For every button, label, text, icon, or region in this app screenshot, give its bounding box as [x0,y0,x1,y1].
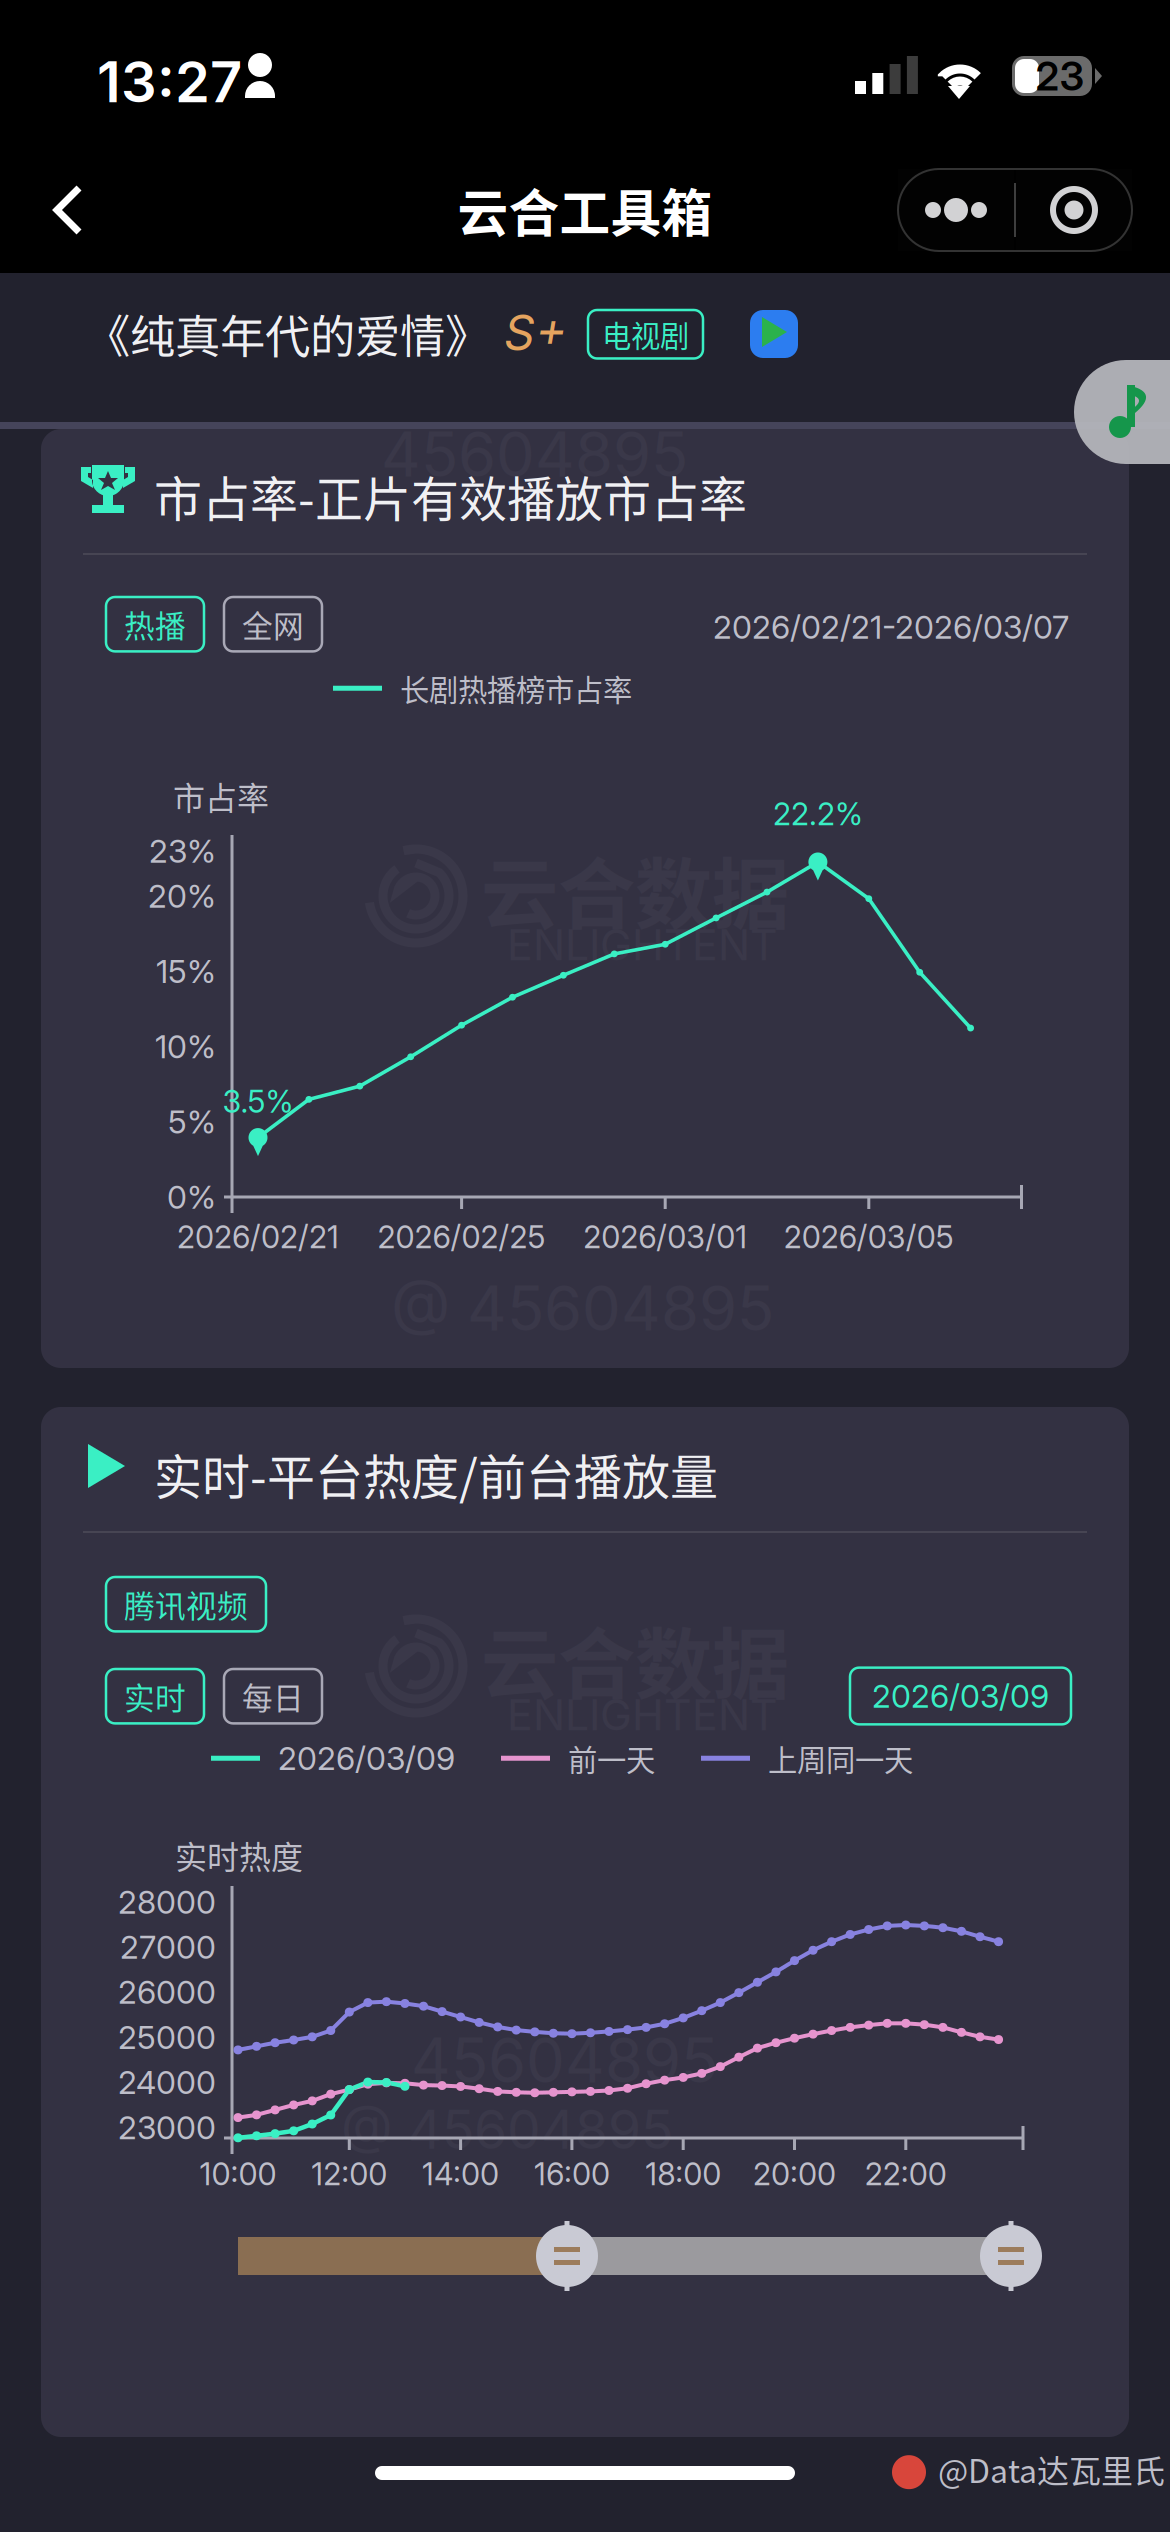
staticText: 前一天 [568,1737,655,1779]
staticText: 市占率 [173,773,269,819]
button[interactable]: 电视剧 [588,310,703,358]
staticText: 实时 [124,1674,186,1718]
staticText: 云合工具箱 [457,173,712,247]
staticText: 电视剧 [602,313,689,355]
staticText: ENLIGHTENT [507,1689,778,1741]
button[interactable]: 热播 [106,597,204,651]
staticText: 实时热度 [175,1832,303,1878]
staticText: 市占率-正片有效播放市占率 [154,461,747,530]
staticText: 45604895 [411,2023,718,2097]
staticText: 2026/02/21 [177,1218,339,1255]
button[interactable]: 2026/03/09 [850,1668,1071,1724]
staticText: 上周同一天 [768,1737,913,1779]
staticText: 18:00 [645,2155,721,2192]
staticText: 《纯真年代的爱情》 [85,301,490,367]
staticText: 全网 [242,602,304,646]
staticText: 15% [156,952,216,991]
staticText: 2026/03/09 [872,1677,1049,1715]
staticText: 13:27 [97,48,242,116]
button[interactable]: 全网 [224,597,322,651]
staticText: 27000 [120,1928,216,1966]
staticText: 45604895 [381,417,688,491]
staticText: 2026/03/01 [583,1218,747,1255]
staticText: 3.5% [222,1083,293,1120]
staticText: 长剧热播榜市占率 [400,667,632,709]
button[interactable]: Back [16,156,124,264]
staticText: 25000 [118,2018,216,2057]
staticText: 云合数据 [481,1603,789,1715]
staticText: 20:00 [753,2155,836,2192]
button[interactable]: 实时 [106,1669,204,1723]
staticText: 5% [168,1102,216,1141]
staticText: 2026/02/25 [378,1218,546,1255]
button[interactable]: More options [898,169,1014,251]
staticText: 28000 [118,1883,216,1921]
button[interactable]: 每日 [224,1669,322,1723]
staticText: 10% [155,1027,216,1066]
staticText: 26000 [118,1973,216,2011]
staticText: 腾讯视频 [124,1582,248,1626]
staticText: 22.2% [773,795,863,832]
staticText: 23% [149,832,216,870]
staticText: 14:00 [422,2155,499,2192]
staticText: 16:00 [534,2155,610,2192]
staticText: 每日 [242,1674,304,1718]
staticText: 23000 [118,2108,216,2147]
staticText: @Data达瓦里氏 [938,2446,1165,2492]
staticText: 实时-平台热度/前台播放量 [154,1439,718,1508]
button[interactable]: Close mini program [1016,169,1132,251]
staticText: 云合数据 [481,833,789,945]
button[interactable]: 腾讯视频 [106,1577,266,1631]
staticText: 20% [148,877,216,915]
staticText: @ 45604895 [341,2097,673,2161]
staticText: ENLIGHTENT [507,919,778,971]
staticText: 热播 [124,602,186,646]
button[interactable]: Music [1074,360,1170,464]
staticText: 23 [1035,52,1084,100]
staticText: 0% [167,1178,216,1216]
staticText: 12:00 [311,2155,387,2192]
staticText: S+ [504,303,567,361]
staticText: 10:00 [199,2155,276,2192]
staticText: 22:00 [865,2155,947,2192]
staticText: 2026/03/09 [278,1739,455,1778]
staticText: 2026/03/05 [784,1218,954,1255]
staticText: 2026/02/21-2026/03/07 [713,608,1069,646]
staticText: 24000 [118,2063,216,2102]
